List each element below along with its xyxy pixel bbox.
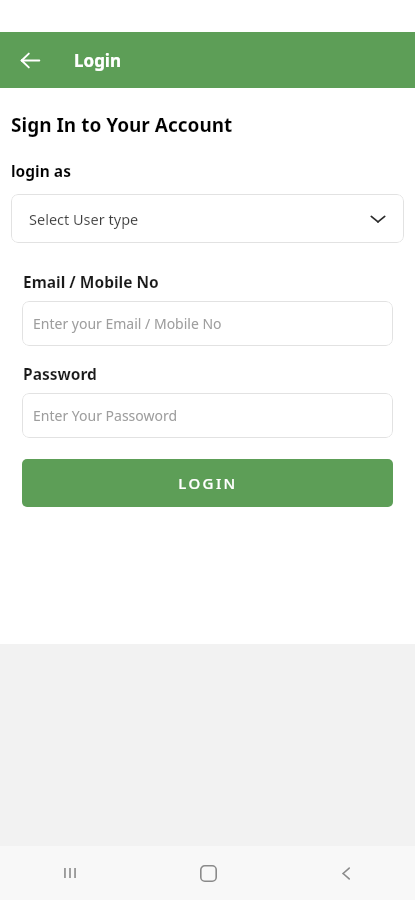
staticText: Select User type — [29, 209, 370, 229]
button[interactable]: Back — [12, 42, 48, 78]
button[interactable]: Select User type — [11, 194, 404, 243]
staticText: LOGIN — [178, 473, 238, 493]
staticText: Enter your Email / Mobile No — [33, 314, 222, 333]
staticText: Enter Your Passoword — [33, 406, 178, 425]
button[interactable]: Back — [277, 846, 415, 900]
button[interactable]: Enter Your Passoword — [22, 393, 393, 438]
staticText: login as — [11, 160, 71, 181]
staticText: Email / Mobile No — [23, 271, 159, 292]
button[interactable]: LOGIN — [22, 459, 393, 507]
button[interactable]: Home — [139, 846, 277, 900]
button[interactable]: Recent apps — [0, 846, 139, 900]
staticText: Sign In to Your Account — [11, 112, 233, 138]
staticText: Login — [74, 49, 122, 72]
button[interactable]: Enter your Email / Mobile No — [22, 301, 393, 346]
staticText: Password — [23, 363, 97, 384]
